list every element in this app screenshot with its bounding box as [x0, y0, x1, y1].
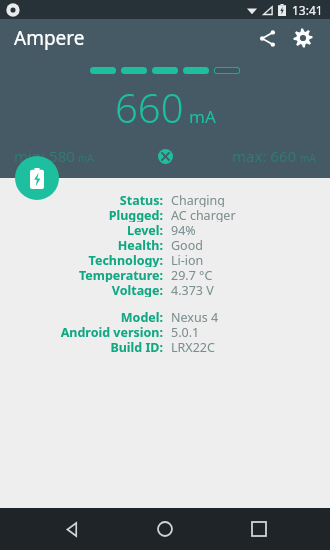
- staticText: Technology:: [88, 252, 163, 267]
- staticText: max: 660: [232, 146, 297, 166]
- staticText: Model:: [120, 309, 163, 324]
- staticText: min: 580: [14, 146, 75, 166]
- button[interactable]: Back: [50, 508, 94, 550]
- staticText: 94%: [171, 222, 196, 237]
- staticText: Temperature:: [78, 267, 163, 282]
- button[interactable]: Temperature:: [0, 267, 330, 282]
- button[interactable]: Model:: [0, 309, 330, 324]
- staticText: 5.0.1: [171, 324, 200, 339]
- button[interactable]: Plugged:: [0, 207, 330, 222]
- staticText: mA: [300, 151, 316, 165]
- button[interactable]: Share: [250, 21, 284, 55]
- staticText: 13:41: [292, 2, 323, 18]
- staticText: Voltage:: [111, 282, 163, 297]
- button[interactable]: Home: [143, 508, 187, 550]
- staticText: Ampere: [14, 25, 85, 51]
- button[interactable]: Recents: [237, 508, 281, 550]
- staticText: Level:: [126, 222, 163, 237]
- button[interactable]: Android version:: [0, 324, 330, 339]
- staticText: 660: [115, 80, 184, 134]
- staticText: Android version:: [60, 324, 163, 339]
- staticText: mA: [78, 151, 94, 165]
- staticText: Plugged:: [108, 207, 163, 222]
- staticText: Build ID:: [110, 339, 163, 354]
- staticText: Charging: [171, 192, 226, 207]
- staticText: AC charger: [171, 207, 236, 222]
- button[interactable]: Level:: [0, 222, 330, 237]
- button[interactable]: Reset: [153, 144, 177, 168]
- button[interactable]: Status:: [0, 192, 330, 207]
- staticText: 29.7 °C: [171, 267, 213, 282]
- button[interactable]: Build ID:: [0, 339, 330, 354]
- staticText: Nexus 4: [171, 309, 219, 324]
- button[interactable]: Technology:: [0, 252, 330, 267]
- button[interactable]: Settings: [286, 21, 320, 55]
- button[interactable]: Health:: [0, 237, 330, 252]
- button[interactable]: Voltage:: [0, 282, 330, 297]
- button[interactable]: Charging status: [15, 156, 59, 200]
- staticText: Li-ion: [171, 252, 204, 267]
- staticText: mA: [189, 105, 216, 128]
- staticText: Good: [171, 237, 203, 252]
- staticText: LRX22C: [171, 339, 215, 354]
- staticText: 4.373 V: [171, 282, 214, 297]
- staticText: Health:: [117, 237, 163, 252]
- staticText: Status:: [119, 192, 163, 207]
